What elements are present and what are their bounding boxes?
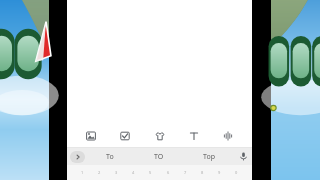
button[interactable]: 6 <box>167 170 170 175</box>
button[interactable]: Expand toolbar <box>70 151 85 163</box>
button[interactable]: Text format <box>184 126 204 146</box>
button[interactable]: TO <box>134 148 184 165</box>
staticText: 2 <box>98 170 101 175</box>
staticText: 1 <box>81 170 84 175</box>
button[interactable]: 4 <box>132 170 135 175</box>
staticText: 4 <box>132 170 135 175</box>
staticText: TO <box>154 152 164 162</box>
button[interactable]: 8 <box>201 170 204 175</box>
button[interactable]: To <box>85 148 134 165</box>
button[interactable]: 9 <box>218 170 221 175</box>
button[interactable]: 7 <box>184 170 187 175</box>
button[interactable]: Checklist <box>115 126 135 146</box>
button[interactable]: Insert image <box>81 126 101 146</box>
button[interactable]: 0 <box>235 170 238 175</box>
staticText: To <box>106 152 114 162</box>
button[interactable]: 1 <box>81 170 84 175</box>
button[interactable]: 2 <box>98 170 101 175</box>
staticText: 7 <box>184 170 187 175</box>
button[interactable]: Voice <box>218 126 238 146</box>
staticText: Top <box>203 152 215 162</box>
staticText: 9 <box>218 170 221 175</box>
staticText: 0 <box>235 170 238 175</box>
button[interactable]: Top <box>184 148 234 165</box>
staticText: 8 <box>201 170 204 175</box>
button[interactable]: Stickers <box>150 126 170 146</box>
staticText: 3 <box>115 170 118 175</box>
button[interactable]: 5 <box>149 170 152 175</box>
staticText: 5 <box>149 170 152 175</box>
button[interactable]: Voice input <box>234 148 252 165</box>
staticText: 6 <box>167 170 170 175</box>
button[interactable]: 3 <box>115 170 118 175</box>
